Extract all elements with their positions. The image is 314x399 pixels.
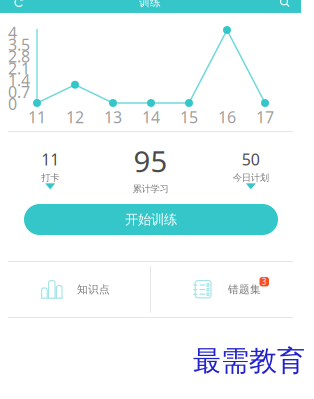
staticText: 95 (133, 141, 167, 180)
staticText: 错题集 (228, 283, 261, 296)
staticText: 开始训练 (125, 211, 177, 228)
staticText: 11 (28, 106, 46, 128)
staticText: 50 (242, 149, 260, 170)
button[interactable]: Search (275, 0, 295, 9)
staticText: 17 (256, 106, 274, 128)
staticText: 今日计划 (233, 172, 269, 183)
staticText: 2.1 (8, 57, 30, 79)
staticText: 16 (218, 106, 236, 128)
staticText: 2.8 (8, 46, 30, 67)
button[interactable]: 错题集 (151, 262, 301, 317)
staticText: 训练 (139, 0, 161, 9)
staticText: 4 (8, 22, 17, 43)
staticText: 0 (8, 93, 17, 114)
staticText: 最需教育 (193, 344, 305, 378)
button[interactable]: 开始训练 (24, 204, 278, 235)
staticText: 14 (142, 106, 160, 128)
staticText: 0.7 (8, 81, 30, 102)
staticText: 3.5 (8, 34, 30, 55)
staticText: 3 (262, 276, 267, 287)
button[interactable]: 知识点 (0, 262, 150, 317)
staticText: 知识点 (77, 283, 110, 296)
staticText: 1.4 (8, 69, 30, 91)
staticText: 15 (180, 106, 198, 128)
button[interactable]: Refresh (9, 0, 29, 9)
staticText: 12 (66, 106, 84, 128)
staticText: 11 (41, 149, 59, 170)
staticText: 打卡 (41, 172, 59, 183)
staticText: 13 (104, 106, 122, 128)
staticText: 累计学习 (132, 183, 168, 195)
